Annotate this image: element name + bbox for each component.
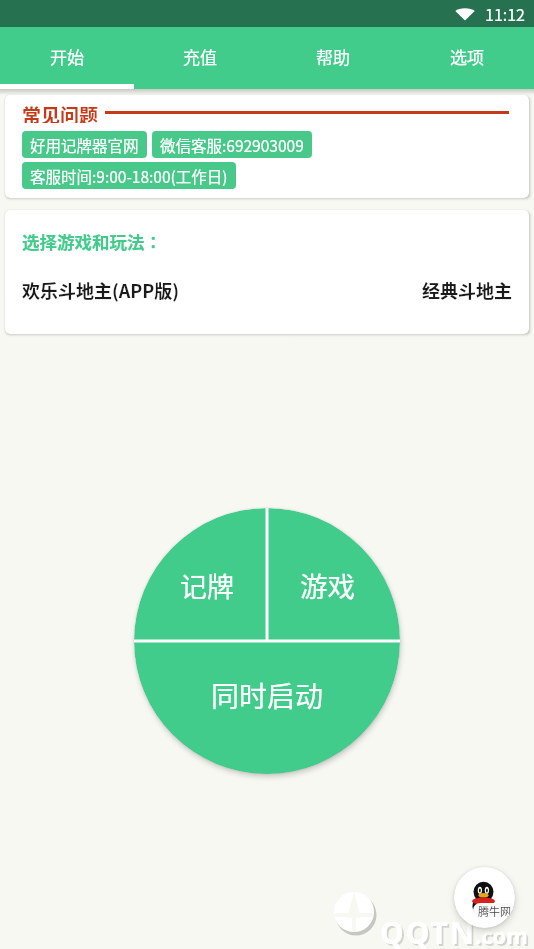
- staticText: QQTN: [380, 912, 477, 949]
- staticText: .com: [475, 920, 528, 949]
- staticText: 选项: [450, 44, 484, 69]
- button[interactable]: 微信客服:692903009: [152, 131, 312, 158]
- button[interactable]: 经典斗地主: [422, 277, 512, 303]
- button[interactable]: 记牌: [147, 559, 267, 611]
- staticText: 开始: [50, 44, 84, 69]
- staticText: 常见问题: [22, 101, 99, 123]
- staticText: 11:12: [485, 2, 525, 25]
- button[interactable]: 游戏: [267, 559, 387, 611]
- staticText: .com: [477, 922, 530, 949]
- staticText: 客服时间:9:00-18:00(工作日): [30, 165, 228, 187]
- staticText: 微信客服:692903009: [160, 134, 304, 156]
- staticText: 帮助: [316, 44, 350, 69]
- button[interactable]: 选项: [400, 27, 534, 89]
- staticText: 腾牛网: [478, 903, 511, 917]
- button[interactable]: 客服时间:9:00-18:00(工作日): [22, 162, 236, 189]
- staticText: 选择游戏和玩法：: [22, 229, 162, 254]
- staticText: 游戏: [300, 565, 355, 605]
- staticText: QQTN: [382, 914, 479, 949]
- staticText: 记牌: [180, 566, 234, 605]
- staticText: 同时启动: [211, 675, 324, 716]
- button[interactable]: QQ customer service: [454, 867, 515, 928]
- button[interactable]: 同时启动: [207, 669, 327, 721]
- staticText: 充值: [183, 44, 217, 69]
- button[interactable]: 好用记牌器官网: [22, 131, 147, 158]
- staticText: 好用记牌器官网: [30, 134, 139, 156]
- button[interactable]: 开始: [0, 27, 133, 89]
- button[interactable]: 充值: [133, 27, 266, 89]
- button[interactable]: 帮助: [266, 27, 400, 89]
- button[interactable]: 欢乐斗地主(APP版): [22, 277, 180, 303]
